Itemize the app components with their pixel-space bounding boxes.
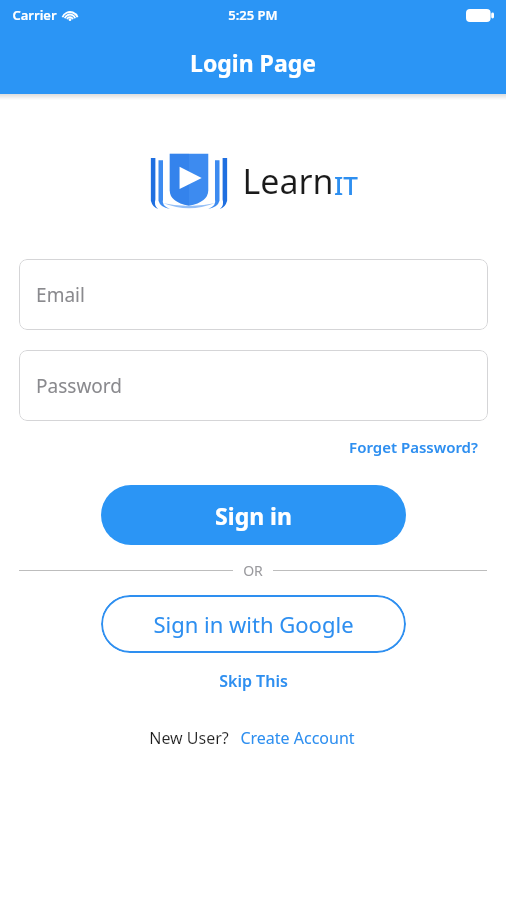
staticText: Skip This [219, 670, 288, 692]
staticText: Sign in [215, 500, 292, 531]
staticText: Email [36, 282, 85, 308]
staticText: New User? [149, 727, 229, 749]
button[interactable]: Sign in with Google [101, 595, 406, 653]
button[interactable]: Create Account [237, 724, 358, 752]
button[interactable]: Skip This [213, 667, 294, 695]
staticText: Carrier [12, 6, 57, 24]
button[interactable]: Sign in [101, 485, 406, 545]
staticText: Create Account [240, 727, 355, 749]
staticText: 5:25 PM [228, 6, 278, 24]
button[interactable]: Password [19, 350, 488, 421]
staticText: Learn [242, 158, 334, 204]
button[interactable]: Email [19, 259, 488, 330]
staticText: Login Page [190, 47, 316, 78]
staticText: Password [36, 373, 122, 399]
staticText: Forget Password? [349, 437, 478, 457]
staticText: Sign in with Google [153, 609, 354, 639]
button[interactable]: Forget Password? [347, 435, 480, 459]
staticText: OR [243, 561, 263, 580]
staticText: IT [334, 167, 358, 202]
other: Battery [466, 9, 494, 22]
